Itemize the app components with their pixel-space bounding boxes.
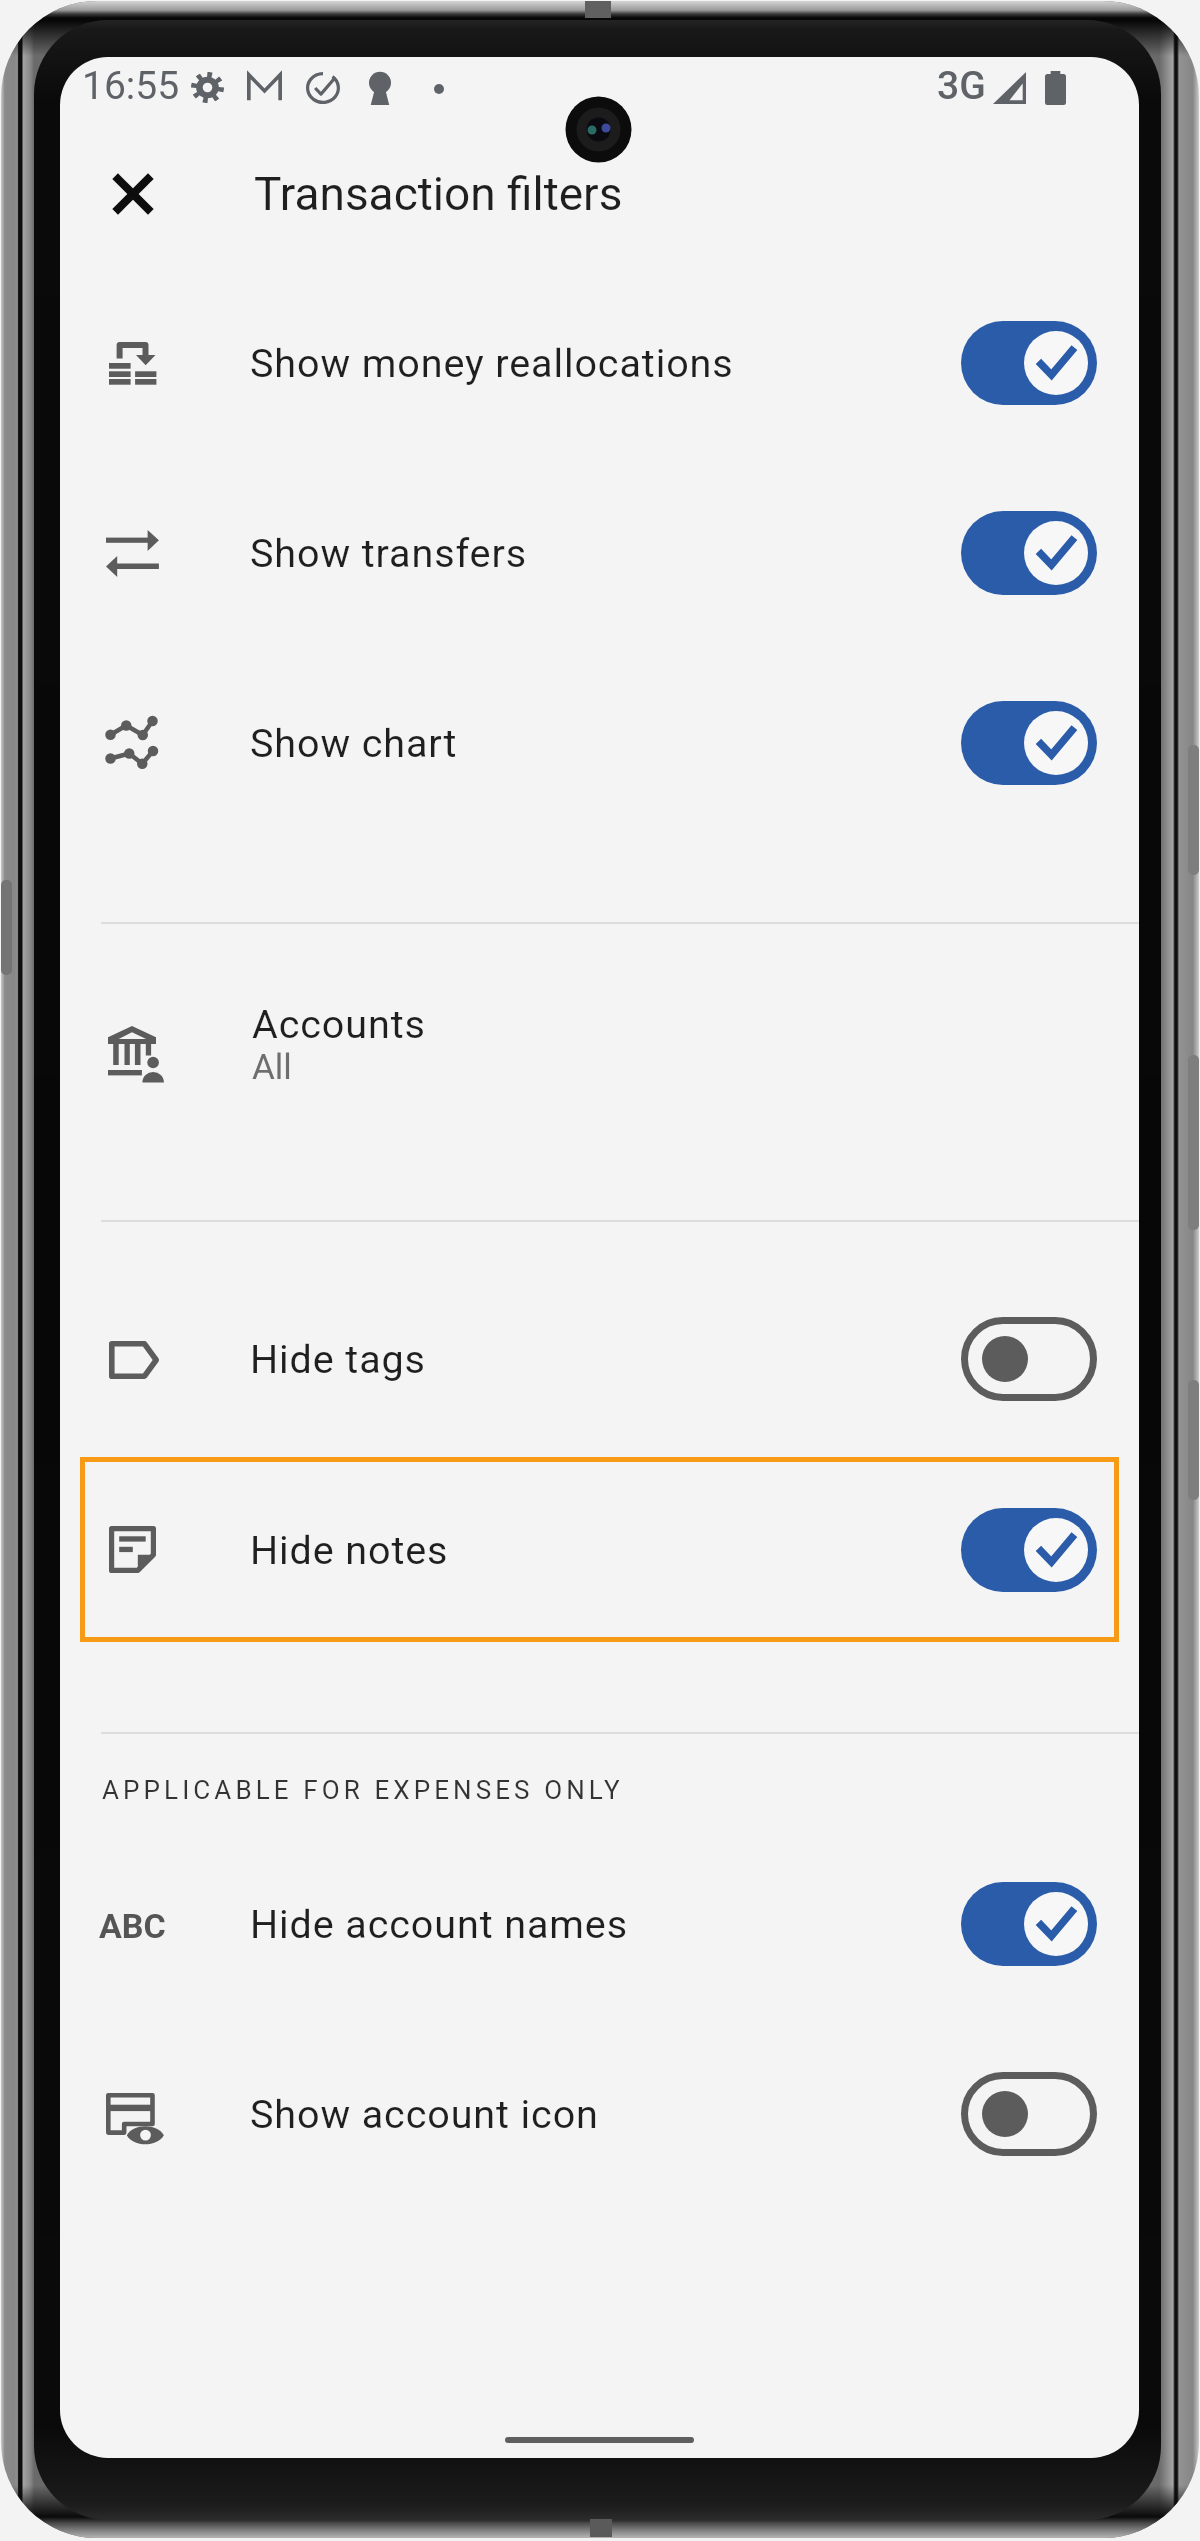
staticText: 16:55 <box>82 63 180 109</box>
staticText: Hide account names <box>250 1901 628 1947</box>
button[interactable]: Show money reallocations <box>60 268 1139 457</box>
staticText: ABC <box>99 1906 166 1946</box>
staticText: 3G <box>937 63 986 109</box>
staticText: All <box>252 1047 292 1088</box>
button[interactable]: Hide tags <box>60 1264 1139 1453</box>
staticText: Hide tags <box>250 1336 426 1382</box>
staticText: Show money reallocations <box>250 340 734 386</box>
staticText: Hide notes <box>250 1527 449 1573</box>
staticText: Show chart <box>250 720 458 766</box>
staticText: Show transfers <box>250 530 528 576</box>
button[interactable]: ABC <box>60 1829 1139 2018</box>
staticText: Transaction filters <box>254 167 623 221</box>
staticText: Accounts <box>252 1001 426 1047</box>
button[interactable]: Close <box>73 129 193 259</box>
button[interactable]: Hide notes <box>80 1457 1119 1642</box>
button[interactable]: Show chart <box>60 648 1139 837</box>
button[interactable]: Show account icon <box>60 2019 1139 2208</box>
button[interactable]: Show transfers <box>60 458 1139 647</box>
button[interactable]: Accounts <box>60 924 1139 1220</box>
staticText: APPLICABLE FOR EXPENSES ONLY <box>102 1775 624 1805</box>
staticText: Show account icon <box>250 2091 599 2137</box>
